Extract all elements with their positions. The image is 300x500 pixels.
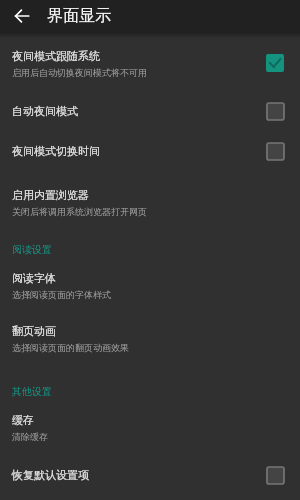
staticText: 夜间模式切换时间 [12,144,100,158]
button[interactable]: 阅读字体 [0,262,300,307]
staticText: 选择阅读页面的字体样式 [12,289,111,300]
staticText: 恢复默认设置项 [12,468,89,482]
staticText: 夜间模式跟随系统 [12,49,100,63]
staticText: 关闭后将调用系统浏览器打开网页 [12,206,147,217]
staticText: 界面显示 [47,6,111,26]
button[interactable]: Back [8,2,36,30]
staticText: 自动夜间模式 [12,104,78,118]
button[interactable]: 自动夜间模式 [0,95,300,127]
staticText: 清除缓存 [12,431,48,442]
button[interactable]: 夜间模式跟随系统 [0,39,300,86]
staticText: 选择阅读页面的翻页动画效果 [12,342,129,353]
button[interactable]: 翻页动画 [0,315,300,360]
button[interactable]: 恢复默认设置项 [0,459,300,491]
staticText: 启用内置浏览器 [12,188,89,202]
other: Restore default settings [266,466,284,484]
other: Night mode follows system, checked [266,54,284,72]
other: Auto switch night mode [266,102,284,120]
staticText: 缓存 [12,413,34,427]
other: Night mode schedule [266,142,284,160]
staticText: 启用后自动切换夜间模式将不可用 [12,67,147,78]
staticText: 其他设置 [12,385,52,398]
staticText: 翻页动画 [12,324,56,338]
button[interactable]: 缓存 [0,404,300,449]
staticText: 阅读字体 [12,271,56,285]
button[interactable]: 启用内置浏览器 [0,179,300,224]
button[interactable]: 夜间模式切换时间 [0,135,300,167]
staticText: 阅读设置 [12,243,52,256]
